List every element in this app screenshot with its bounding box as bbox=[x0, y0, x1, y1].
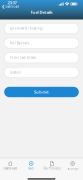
button[interactable]: Settings bbox=[62, 161, 83, 170]
button[interactable]: Petrol Card Details bbox=[4, 53, 79, 63]
staticText: Petrol Card Details bbox=[10, 56, 36, 59]
staticText: Speedometer Readings bbox=[10, 27, 43, 30]
staticText: Settings bbox=[67, 167, 78, 170]
button[interactable]: Fuel bbox=[21, 161, 42, 170]
button[interactable]: Dashboard bbox=[0, 161, 21, 170]
staticText: Dashboard bbox=[3, 167, 17, 170]
staticText: Fuel Expenses bbox=[10, 41, 29, 45]
staticText: Dashboard bbox=[5, 5, 19, 8]
staticText: Fuel Details bbox=[30, 10, 52, 15]
button[interactable]: Fuel Expenses bbox=[4, 38, 79, 48]
button[interactable]: Location bbox=[4, 67, 79, 77]
staticText: Location bbox=[10, 71, 21, 74]
staticText: Our Policies bbox=[43, 167, 60, 170]
button[interactable]: Dashboard bbox=[0, 4, 21, 9]
button[interactable]: Our Policies bbox=[41, 161, 62, 170]
staticText: Submit bbox=[34, 89, 49, 95]
button[interactable]: Speedometer Readings bbox=[4, 23, 79, 34]
button[interactable]: Submit bbox=[4, 87, 79, 97]
staticText: Fuel bbox=[28, 167, 34, 170]
staticText: 23:37 bbox=[7, 0, 16, 5]
